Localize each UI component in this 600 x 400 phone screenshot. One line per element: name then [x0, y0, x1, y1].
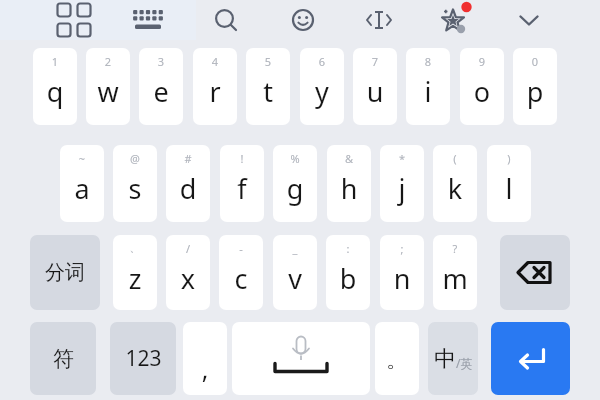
- staticText: 123: [125, 344, 162, 373]
- staticText: 4: [193, 54, 237, 69]
- staticText: p: [513, 73, 557, 110]
- button[interactable]: *: [380, 145, 424, 222]
- button[interactable]: 分词: [30, 235, 100, 310]
- button[interactable]: ;: [380, 235, 424, 310]
- button[interactable]: -: [219, 235, 263, 310]
- staticText: k: [433, 170, 477, 207]
- button[interactable]: 123: [110, 322, 176, 395]
- button[interactable]: %: [273, 145, 317, 222]
- staticText: !: [220, 151, 264, 166]
- button[interactable]: 1: [33, 48, 77, 125]
- staticText: 中: [434, 345, 456, 373]
- staticText: t: [246, 73, 290, 110]
- staticText: 分词: [45, 260, 85, 285]
- staticText: @: [113, 151, 157, 166]
- button[interactable]: !: [220, 145, 264, 222]
- staticText: 7: [353, 54, 397, 69]
- button[interactable]: 符: [30, 322, 96, 395]
- button[interactable]: Space: [232, 322, 370, 395]
- staticText: l: [487, 170, 531, 207]
- staticText: %: [273, 151, 317, 166]
- staticText: s: [113, 170, 157, 207]
- staticText: z: [113, 260, 157, 297]
- staticText: ): [487, 151, 531, 166]
- staticText: :: [326, 241, 370, 256]
- staticText: r: [193, 73, 237, 110]
- button[interactable]: Keyboard: [122, 0, 174, 40]
- staticText: 0: [513, 54, 557, 69]
- staticText: v: [273, 260, 317, 297]
- staticText: 1: [33, 54, 77, 69]
- button[interactable]: 9: [460, 48, 504, 125]
- button[interactable]: :: [326, 235, 370, 310]
- staticText: #: [166, 151, 210, 166]
- staticText: /: [166, 241, 210, 256]
- staticText: u: [353, 73, 397, 110]
- staticText: 8: [406, 54, 450, 69]
- staticText: (: [433, 151, 477, 166]
- button[interactable]: Hide keyboard: [503, 0, 555, 40]
- button[interactable]: Emoji: [277, 0, 329, 40]
- staticText: -: [219, 241, 263, 256]
- staticText: ?: [433, 241, 477, 256]
- staticText: 9: [460, 54, 504, 69]
- button[interactable]: ?: [433, 235, 477, 310]
- staticText: ,: [183, 352, 227, 386]
- button[interactable]: 、: [113, 235, 157, 310]
- staticText: y: [300, 73, 344, 110]
- button[interactable]: 0: [513, 48, 557, 125]
- staticText: a: [60, 170, 104, 207]
- staticText: i: [406, 73, 450, 110]
- staticText: o: [460, 73, 504, 110]
- staticText: d: [166, 170, 210, 207]
- button[interactable]: 。: [375, 322, 419, 395]
- staticText: f: [220, 170, 264, 207]
- staticText: *: [380, 151, 424, 166]
- staticText: ;: [380, 241, 424, 256]
- button[interactable]: ): [487, 145, 531, 222]
- staticText: h: [327, 170, 371, 207]
- button[interactable]: 中: [428, 322, 478, 395]
- staticText: c: [219, 260, 263, 297]
- staticText: e: [139, 73, 183, 110]
- button[interactable]: 4: [193, 48, 237, 125]
- staticText: 符: [53, 346, 74, 372]
- staticText: w: [86, 73, 130, 110]
- staticText: ~: [60, 151, 104, 166]
- staticText: 、: [113, 241, 157, 255]
- staticText: 3: [139, 54, 183, 69]
- staticText: g: [273, 170, 317, 207]
- staticText: 5: [246, 54, 290, 69]
- button[interactable]: #: [166, 145, 210, 222]
- button[interactable]: 7: [353, 48, 397, 125]
- button[interactable]: Backspace: [500, 235, 570, 310]
- staticText: &: [327, 151, 371, 166]
- button[interactable]: @: [113, 145, 157, 222]
- staticText: x: [166, 260, 210, 297]
- button[interactable]: ~: [60, 145, 104, 222]
- button[interactable]: Store: [428, 0, 480, 40]
- button[interactable]: Panels: [48, 0, 100, 40]
- button[interactable]: 3: [139, 48, 183, 125]
- staticText: q: [33, 73, 77, 110]
- button[interactable]: /: [166, 235, 210, 310]
- button[interactable]: 5: [246, 48, 290, 125]
- staticText: b: [326, 260, 370, 297]
- staticText: 。: [375, 346, 419, 374]
- staticText: n: [380, 260, 424, 297]
- button[interactable]: Text cursor: [353, 0, 405, 40]
- staticText: m: [433, 260, 477, 297]
- staticText: j: [380, 170, 424, 207]
- button[interactable]: 2: [86, 48, 130, 125]
- staticText: 6: [300, 54, 344, 69]
- button[interactable]: 8: [406, 48, 450, 125]
- staticText: 2: [86, 54, 130, 69]
- staticText: _: [273, 241, 317, 256]
- button[interactable]: (: [433, 145, 477, 222]
- button[interactable]: &: [327, 145, 371, 222]
- button[interactable]: Search: [200, 0, 252, 40]
- button[interactable]: Enter: [491, 322, 570, 395]
- button[interactable]: [183, 322, 227, 395]
- button[interactable]: _: [273, 235, 317, 310]
- button[interactable]: 6: [300, 48, 344, 125]
